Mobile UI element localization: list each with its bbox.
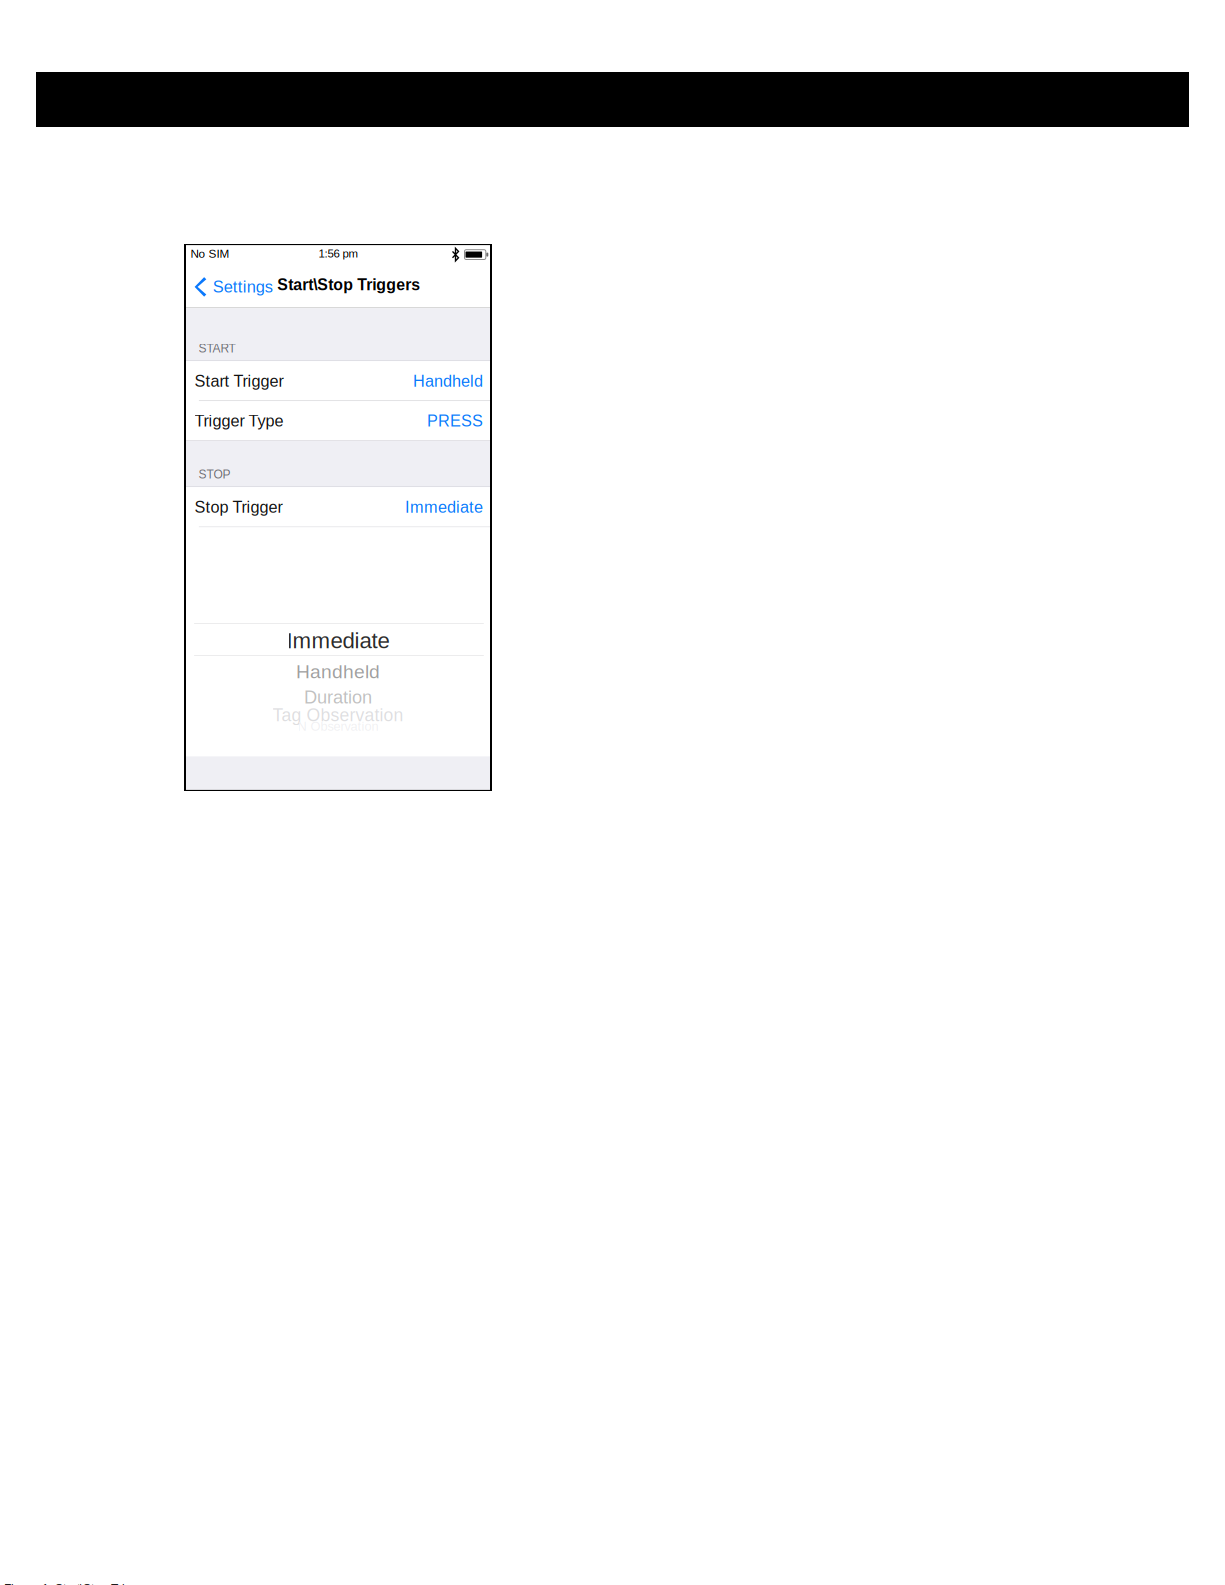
staticText: START <box>199 342 236 355</box>
staticText: Start Trigger <box>194 372 283 390</box>
button[interactable]: Stop Trigger <box>186 487 490 527</box>
button[interactable]: Start Trigger <box>186 361 490 401</box>
staticText: Tag Observation <box>272 705 403 725</box>
staticText: Immediate <box>405 498 483 516</box>
button[interactable]: Trigger Type <box>186 401 490 441</box>
staticText: PRESS <box>427 412 483 430</box>
staticText: No SIM <box>191 247 230 260</box>
staticText: Handheld <box>296 661 380 682</box>
staticText: 1:56 pm <box>318 247 358 260</box>
staticText: Figure 1. Start\Stop Triggers <box>4 1582 156 1585</box>
staticText: Immediate <box>286 628 389 653</box>
staticText: Trigger Type <box>194 412 283 430</box>
staticText: Duration <box>304 687 372 707</box>
staticText: Settings <box>213 278 273 296</box>
staticText: Stop Trigger <box>194 498 282 516</box>
staticText: Handheld <box>413 372 483 390</box>
staticText: STOP <box>199 468 231 481</box>
button[interactable]: Settings <box>186 276 277 308</box>
staticText: N Observation <box>297 719 378 733</box>
staticText: Start\Stop Triggers <box>277 276 420 294</box>
